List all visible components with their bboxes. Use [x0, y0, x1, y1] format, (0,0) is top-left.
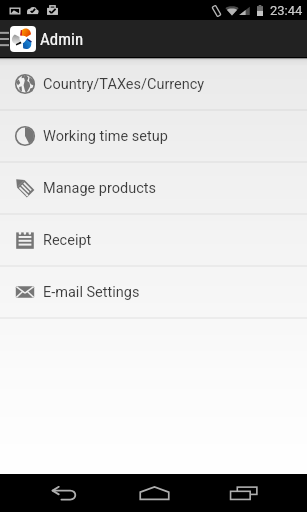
- staticText: 23:44: [270, 3, 303, 18]
- staticText: Admin: [40, 29, 84, 49]
- button[interactable]: Manage products: [0, 162, 307, 214]
- staticText: Manage products: [43, 180, 157, 197]
- staticText: E-mail Settings: [43, 284, 140, 301]
- staticText: Working time setup: [43, 128, 168, 145]
- staticText: Country/TAXes/Currency: [43, 76, 205, 93]
- button[interactable]: Back: [19, 474, 109, 512]
- staticText: Receipt: [43, 232, 92, 249]
- button[interactable]: Receipt: [0, 214, 307, 266]
- button[interactable]: Country/TAXes/Currency: [0, 58, 307, 110]
- button[interactable]: Home: [109, 474, 199, 512]
- button[interactable]: E-mail Settings: [0, 266, 307, 318]
- button[interactable]: Working time setup: [0, 110, 307, 162]
- button[interactable]: Admin: [0, 20, 307, 58]
- button[interactable]: Recent apps: [199, 474, 289, 512]
